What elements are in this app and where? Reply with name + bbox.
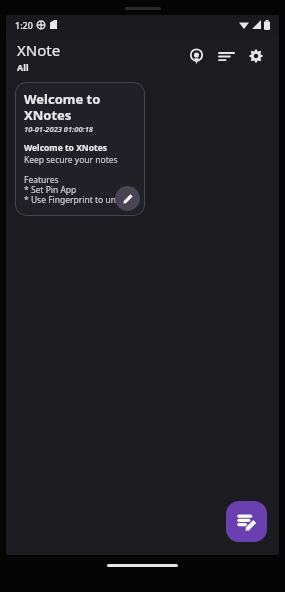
staticText: 10-01-2023 01:00:18 [24, 124, 93, 134]
button[interactable]: Search [181, 41, 211, 71]
staticText: Features * Set Pin App * Use Fingerprint… [24, 174, 132, 206]
staticText: Welcome to XNotes [24, 90, 138, 123]
staticText: All [17, 61, 29, 73]
button[interactable]: New note [226, 501, 267, 542]
staticText: XNote [17, 40, 61, 60]
staticText: Keep secure your notes [24, 154, 118, 166]
staticText: Welcome to XNotes [24, 142, 108, 154]
staticText: 1:20 [15, 19, 33, 31]
button[interactable]: Settings [241, 41, 271, 71]
button[interactable]: Welcome to XNotes [15, 82, 145, 216]
button[interactable]: Sort [211, 41, 241, 71]
button[interactable]: Edit note [115, 186, 140, 211]
